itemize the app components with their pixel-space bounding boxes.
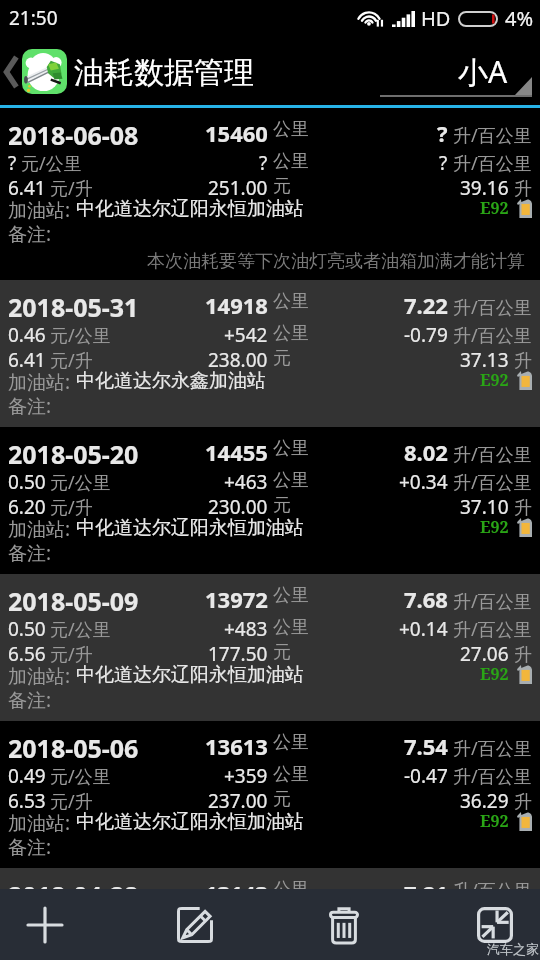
button[interactable]: Delete (269, 889, 419, 960)
staticText: 升 (514, 350, 532, 373)
button[interactable]: Edit (120, 889, 270, 960)
staticText: 6.53 (8, 788, 46, 814)
staticText: 7.68 (404, 584, 448, 614)
staticText: 6.56 (8, 641, 46, 667)
staticText: 13972 (205, 584, 268, 614)
staticText: 升/百公里 (453, 151, 532, 176)
staticText: 元/公里 (50, 910, 111, 931)
staticText: 备注: (8, 393, 52, 419)
staticText: -0.47 (404, 763, 448, 789)
button[interactable]: 2018-05-20 (0, 427, 540, 574)
staticText: 37.13 (460, 347, 509, 373)
staticText: E92 (480, 197, 509, 219)
staticText: ? (439, 150, 448, 176)
button[interactable]: 2018-05-09 (0, 574, 540, 721)
staticText: 升 (514, 644, 532, 667)
staticText: 升/百公里 (453, 323, 532, 348)
staticText: 元/升 (50, 495, 93, 520)
staticText: 2018-04-28 (8, 878, 139, 899)
staticText: 备注: (8, 834, 52, 860)
staticText: 0.48 (8, 910, 46, 931)
staticText: 升/百公里 (453, 589, 532, 614)
staticText: 21:50 (9, 5, 58, 31)
staticText: 公里 (273, 584, 309, 607)
staticText: 27.06 (460, 641, 509, 667)
staticText: 元/公里 (50, 323, 111, 348)
staticText: 升/百公里 (453, 295, 532, 320)
staticText: 升 (514, 497, 532, 520)
staticText: 公里 (273, 763, 309, 786)
staticText: E92 (480, 369, 509, 391)
staticText: 汽车之家 (487, 941, 539, 957)
staticText: 238.00 (208, 347, 268, 373)
staticText: 14918 (205, 290, 268, 320)
staticText: 加油站: (8, 197, 76, 223)
button[interactable]: 小A (380, 38, 532, 105)
staticText: +542 (224, 322, 268, 348)
staticText: 升 (514, 178, 532, 201)
staticText: 元 (273, 641, 291, 664)
staticText: 元/升 (50, 348, 93, 373)
staticText: 加油站: (8, 369, 76, 395)
button[interactable]: 2018-06-08 (0, 108, 540, 280)
staticText: 251.00 (208, 175, 268, 201)
staticText: 备注: (8, 221, 52, 247)
staticText: 177.50 (208, 641, 268, 667)
button[interactable]: 2018-05-06 (0, 721, 540, 868)
staticText: 元 (273, 347, 291, 370)
staticText: 备注: (8, 540, 52, 566)
staticText: 元 (273, 788, 291, 811)
button[interactable]: Add (0, 889, 90, 960)
staticText: E92 (480, 810, 509, 832)
staticText: 加油站: (8, 663, 76, 689)
staticText: 升/百公里 (453, 123, 532, 148)
staticText: 6.53 (8, 935, 46, 956)
staticText: 元/公里 (50, 470, 111, 495)
staticText: 公里 (273, 469, 309, 492)
staticText: 2018-05-06 (8, 731, 139, 765)
staticText: 元/升 (50, 789, 93, 814)
button[interactable]: 2018-05-31 (0, 280, 540, 427)
staticText: 中化道达尔辽阳永恒加油站 (76, 516, 304, 540)
staticText: 升/百公里 (453, 617, 532, 642)
staticText: 升/百公里 (453, 470, 532, 495)
staticText: E92 (480, 516, 509, 538)
staticText: ? (437, 118, 448, 148)
staticText: 37.52 (460, 935, 509, 956)
staticText: 6.41 (8, 347, 46, 373)
staticText: +483 (224, 616, 268, 642)
staticText: 加油站: (8, 810, 76, 836)
staticText: 中化道达尔永鑫加油站 (76, 369, 266, 393)
staticText: 6.41 (8, 175, 46, 201)
staticText: E92 (480, 663, 509, 685)
staticText: 公里 (273, 150, 309, 173)
staticText: 元/公里 (50, 617, 111, 642)
staticText: 元 (273, 494, 291, 517)
staticText: 公里 (273, 616, 309, 639)
button[interactable]: 2018-04-28 (0, 868, 540, 889)
staticText: 7.22 (404, 290, 448, 320)
staticText: 公里 (273, 322, 309, 345)
staticText: 0.50 (8, 469, 46, 495)
staticText: 本次油耗要等下次油灯亮或者油箱加满才能计算 (147, 250, 525, 273)
staticText: 4% (505, 5, 534, 32)
staticText: 230.00 (208, 494, 268, 520)
staticText: 2018-05-09 (8, 584, 139, 618)
staticText: 13613 (205, 731, 268, 761)
staticText: 2018-05-31 (8, 290, 139, 324)
staticText: 升/百公里 (453, 764, 532, 789)
staticText: 2018-06-08 (8, 118, 139, 152)
button[interactable]: Back (0, 38, 22, 105)
staticText: 中化道达尔辽阳永恒加油站 (76, 197, 304, 221)
staticText: 油耗数据管理 (74, 54, 254, 92)
staticText: +463 (224, 469, 268, 495)
button[interactable]: Collapse (450, 889, 540, 960)
staticText: 0.46 (8, 322, 46, 348)
staticText: 元/公里 (21, 151, 82, 176)
staticText: 36.29 (460, 788, 509, 814)
staticText: 237.00 (208, 788, 268, 814)
